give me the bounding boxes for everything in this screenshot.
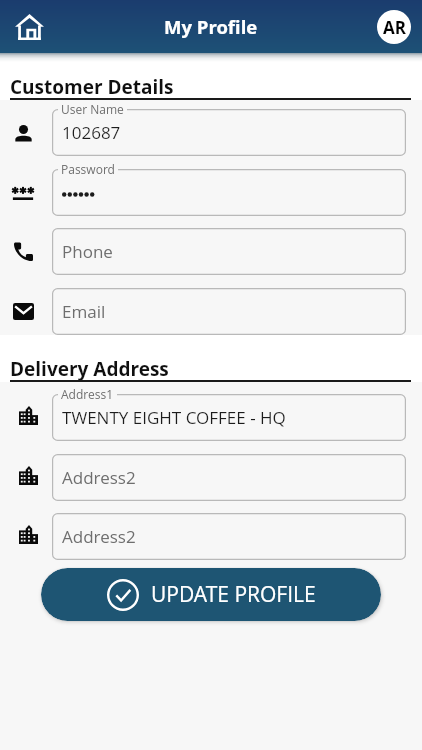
staticText: Address2 [62,525,136,548]
staticText: My Profile [164,14,258,39]
button[interactable]: Email [0,288,422,335]
button[interactable]: 102687 [0,109,422,156]
staticText: TWENTY EIGHT COFFEE - HQ [62,406,286,429]
staticText: Address1 [61,386,114,402]
staticText: User Name [61,101,124,117]
button[interactable]: Address2 [0,454,422,501]
button[interactable]: Password [0,169,422,216]
button[interactable]: UPDATE PROFILE [41,568,381,621]
staticText: Password [61,161,115,177]
button[interactable]: AR [377,10,411,44]
staticText: 102687 [62,121,121,144]
staticText: Phone [62,240,113,263]
button[interactable]: TWENTY EIGHT COFFEE - HQ [0,394,422,441]
staticText: AR [383,16,406,39]
staticText: UPDATE PROFILE [151,580,316,609]
staticText: Customer Details [10,74,174,100]
staticText: Email [62,300,106,323]
staticText: Delivery Address [10,356,169,382]
button[interactable]: Home [10,8,48,46]
staticText: Address2 [62,466,136,489]
button[interactable]: Address2 [0,513,422,560]
button[interactable]: Phone [0,228,422,275]
